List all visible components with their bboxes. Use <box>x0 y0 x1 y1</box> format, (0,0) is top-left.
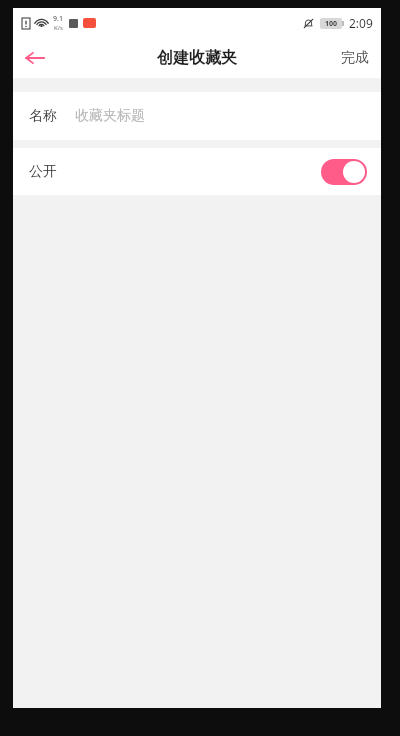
staticText: 9.1 <box>53 14 63 24</box>
staticText: 2:09 <box>349 15 373 31</box>
button[interactable]: Back <box>13 38 57 78</box>
staticText: 100 <box>325 19 338 29</box>
staticText: 创建收藏夹 <box>157 48 237 68</box>
staticText: 名称 <box>29 107 57 125</box>
staticText: 完成 <box>341 49 369 67</box>
staticText: K/s <box>54 24 63 32</box>
button[interactable]: 名称 <box>13 92 381 140</box>
button[interactable]: 公开 <box>13 148 381 195</box>
button[interactable]: 完成 <box>329 38 381 78</box>
staticText: 公开 <box>29 163 57 181</box>
button[interactable]: Public toggle <box>321 159 367 185</box>
staticText: 收藏夹标题 <box>75 107 145 125</box>
